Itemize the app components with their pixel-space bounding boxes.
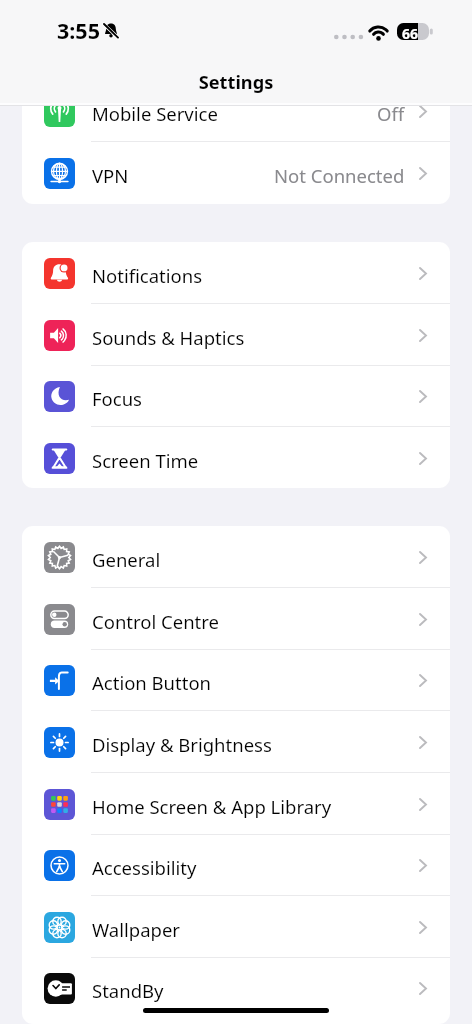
button[interactable]: Sounds & Haptics (22, 304, 450, 366)
button[interactable]: Display & Brightness (22, 711, 450, 773)
staticText: Focus (92, 386, 142, 411)
button[interactable]: StandBy (22, 957, 450, 1019)
staticText: Settings (0, 70, 472, 95)
staticText: Action Button (92, 670, 212, 695)
staticText: 66 (402, 24, 419, 41)
staticText: 3:55 (57, 16, 100, 45)
staticText: General (92, 547, 161, 572)
staticText: Home Screen & App Library (92, 794, 332, 819)
button[interactable]: VPN (22, 142, 450, 204)
staticText: Display & Brightness (92, 732, 272, 757)
button[interactable]: Accessibility (22, 834, 450, 896)
button[interactable]: Control Centre (22, 588, 450, 650)
staticText: Not Connected (274, 163, 405, 188)
staticText: VPN (92, 163, 129, 188)
staticText: StandBy (92, 978, 164, 1003)
button[interactable]: General (22, 526, 450, 588)
staticText: Wallpaper (92, 917, 180, 942)
button[interactable]: Screen Time (22, 427, 450, 488)
button[interactable]: Notifications (22, 242, 450, 304)
button[interactable]: Mobile Service (22, 80, 450, 142)
button[interactable]: Wallpaper (22, 896, 450, 958)
staticText: Off (377, 101, 405, 126)
button[interactable]: Focus (22, 365, 450, 427)
button[interactable]: Action Button (22, 649, 450, 711)
staticText: Mobile Service (92, 101, 218, 126)
button[interactable]: Home Screen & App Library (22, 773, 450, 835)
staticText: Notifications (92, 263, 203, 288)
staticText: Sounds & Haptics (92, 325, 245, 350)
staticText: Screen Time (92, 448, 199, 473)
staticText: Accessibility (92, 855, 197, 880)
staticText: Control Centre (92, 609, 219, 634)
